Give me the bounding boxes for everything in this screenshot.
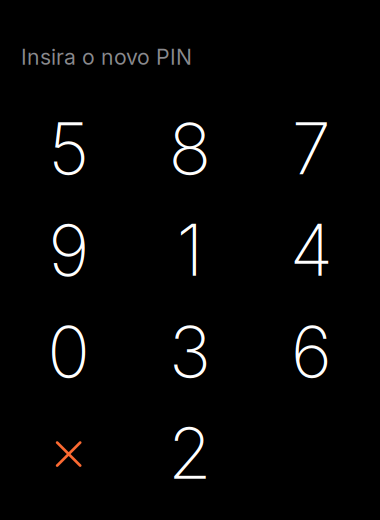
button[interactable]: Delete [8,402,129,504]
button[interactable]: 3 [129,301,251,402]
button[interactable]: 7 [251,98,372,199]
button[interactable]: 5 [8,98,129,199]
staticText: 1 [176,207,203,293]
button[interactable]: 2 [129,402,251,504]
button[interactable]: 0 [8,301,129,402]
staticText: 5 [48,106,89,191]
button[interactable]: 1 [129,199,251,301]
staticText: 4 [290,207,333,293]
staticText: 6 [291,309,332,394]
button[interactable]: 8 [129,98,251,199]
button[interactable]: 9 [8,199,129,301]
staticText: 9 [48,207,89,293]
staticText: 0 [47,309,90,394]
staticText: 3 [169,309,211,394]
staticText: 8 [168,106,211,191]
staticText: Insira o novo PIN [21,44,192,70]
button[interactable]: 6 [251,301,372,402]
staticText: 7 [292,106,331,191]
button[interactable]: 4 [251,199,372,301]
staticText: 2 [168,410,212,496]
